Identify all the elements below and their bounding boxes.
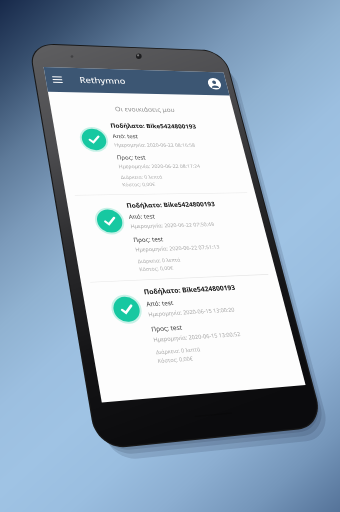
staticText: Ποδήλατο: Bike5424800193 <box>106 447 274 464</box>
staticText: Από: test <box>106 305 155 321</box>
staticText: Διάρκεια: 0 λεπτά <box>106 392 184 405</box>
staticText: Οι ενοικιάσεις μου <box>0 80 340 98</box>
staticText: Προς: test <box>106 185 161 201</box>
staticText: Ημερομηνία: 2020-06-15 13:00:20 <box>106 489 263 503</box>
staticText: Διάρκεια: 0 λεπτά <box>106 227 184 240</box>
staticText: Ημερομηνία: 2020-06-22 07:50:49 <box>106 324 263 338</box>
staticText: Ποδήλατο: Bike5424800193 <box>106 117 274 134</box>
staticText: Ημερομηνία: 2020-06-22 08:16:58 <box>106 159 263 173</box>
staticText: Rethymno <box>64 14 153 39</box>
staticText: Από: test <box>106 140 155 156</box>
button[interactable]: Open navigation menu <box>4 9 40 45</box>
staticText: Κόστος: 0,00€ <box>106 242 168 255</box>
button[interactable]: Completed rental <box>44 294 96 346</box>
staticText: Ποδήλατο: Bike5424800193 <box>106 282 274 299</box>
button[interactable]: Completed rental <box>44 129 96 181</box>
staticText: Προς: test <box>106 350 161 366</box>
staticText: Ημερομηνία: 2020-06-22 08:17:24 <box>106 204 263 218</box>
